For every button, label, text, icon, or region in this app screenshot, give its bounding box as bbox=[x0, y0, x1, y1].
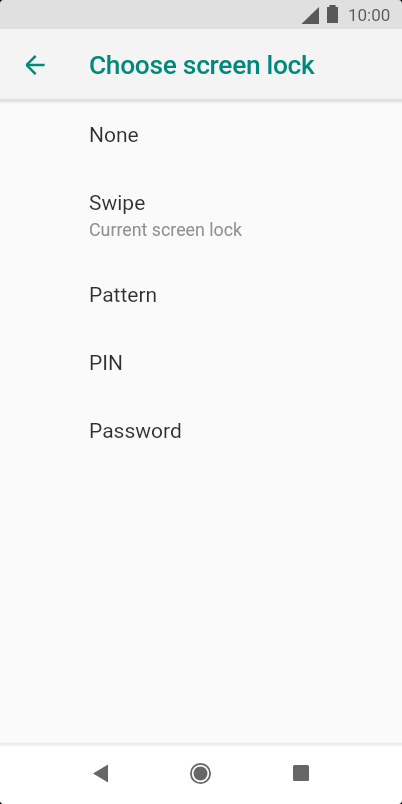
staticText: Choose screen lock bbox=[89, 50, 315, 81]
button[interactable]: Password bbox=[0, 397, 402, 465]
staticText: Pattern bbox=[89, 283, 158, 308]
staticText: Swipe bbox=[89, 191, 146, 216]
staticText: 10:00 bbox=[348, 5, 391, 25]
staticText: None bbox=[89, 123, 139, 148]
button[interactable]: Swipe bbox=[0, 169, 402, 261]
button[interactable]: Back bbox=[73, 746, 127, 800]
button[interactable]: Navigate up bbox=[9, 39, 61, 91]
button[interactable]: None bbox=[0, 101, 402, 169]
staticText: PIN bbox=[89, 351, 123, 376]
button[interactable]: Recent apps bbox=[274, 746, 328, 800]
button[interactable]: Home bbox=[173, 746, 227, 800]
button[interactable]: PIN bbox=[0, 329, 402, 397]
staticText: Current screen lock bbox=[89, 219, 243, 240]
staticText: Password bbox=[89, 419, 182, 444]
button[interactable]: Pattern bbox=[0, 261, 402, 329]
